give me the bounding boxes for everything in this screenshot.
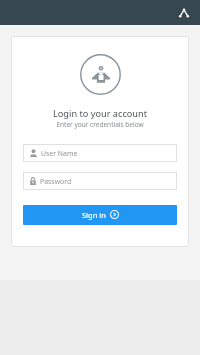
staticText: Enter your credentials below bbox=[11, 120, 189, 129]
staticText: Sign in bbox=[82, 210, 106, 220]
button[interactable]: User Name bbox=[23, 144, 177, 162]
staticText: Password bbox=[40, 177, 72, 186]
button[interactable]: Share bbox=[175, 4, 193, 22]
button[interactable]: Password bbox=[23, 172, 177, 190]
button[interactable]: Sign in bbox=[23, 205, 177, 225]
staticText: User Name bbox=[41, 149, 78, 158]
staticText: Login to your account bbox=[11, 107, 189, 120]
